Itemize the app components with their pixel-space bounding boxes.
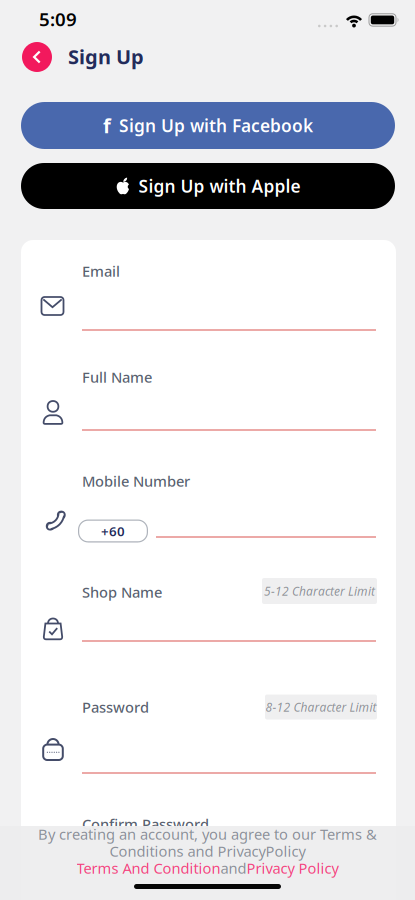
staticText: Full Name [82, 367, 152, 387]
button[interactable]: Sign Up with Apple [21, 163, 395, 209]
staticText: 8-12 Character Limit [265, 699, 376, 715]
button[interactable]: Full Name [21, 362, 396, 438]
staticText: Email [82, 261, 120, 281]
button[interactable]: Password [21, 690, 396, 780]
staticText: Confirm Password [82, 814, 209, 834]
staticText: By creating an account, you agree to our… [38, 824, 377, 844]
button[interactable]: Privacy Policy [246, 858, 338, 878]
staticText: and [220, 858, 246, 878]
staticText: Sign Up [68, 43, 144, 70]
button[interactable]: Terms And Condition [76, 858, 220, 878]
staticText: Sign Up with Apple [138, 174, 300, 197]
staticText: Privacy Policy [246, 858, 338, 878]
button[interactable]: Email [21, 256, 396, 340]
staticText: Terms And Condition [76, 858, 220, 878]
staticText: Sign Up with Facebook [119, 114, 313, 137]
staticText: Conditions and PrivacyPolicy [109, 841, 305, 861]
staticText: +60 [101, 522, 125, 540]
button[interactable]: f [21, 102, 395, 149]
button[interactable]: Mobile Number [21, 466, 396, 546]
button[interactable]: +60 [78, 519, 148, 542]
staticText: 5-12 Character Limit [264, 583, 375, 599]
staticText: 5:09 [39, 7, 77, 31]
staticText: Password [82, 697, 149, 717]
staticText: Mobile Number [82, 471, 190, 491]
staticText: f [103, 112, 111, 139]
staticText: Shop Name [82, 582, 162, 602]
button[interactable]: Shop Name [21, 576, 396, 648]
button[interactable] [22, 42, 52, 72]
